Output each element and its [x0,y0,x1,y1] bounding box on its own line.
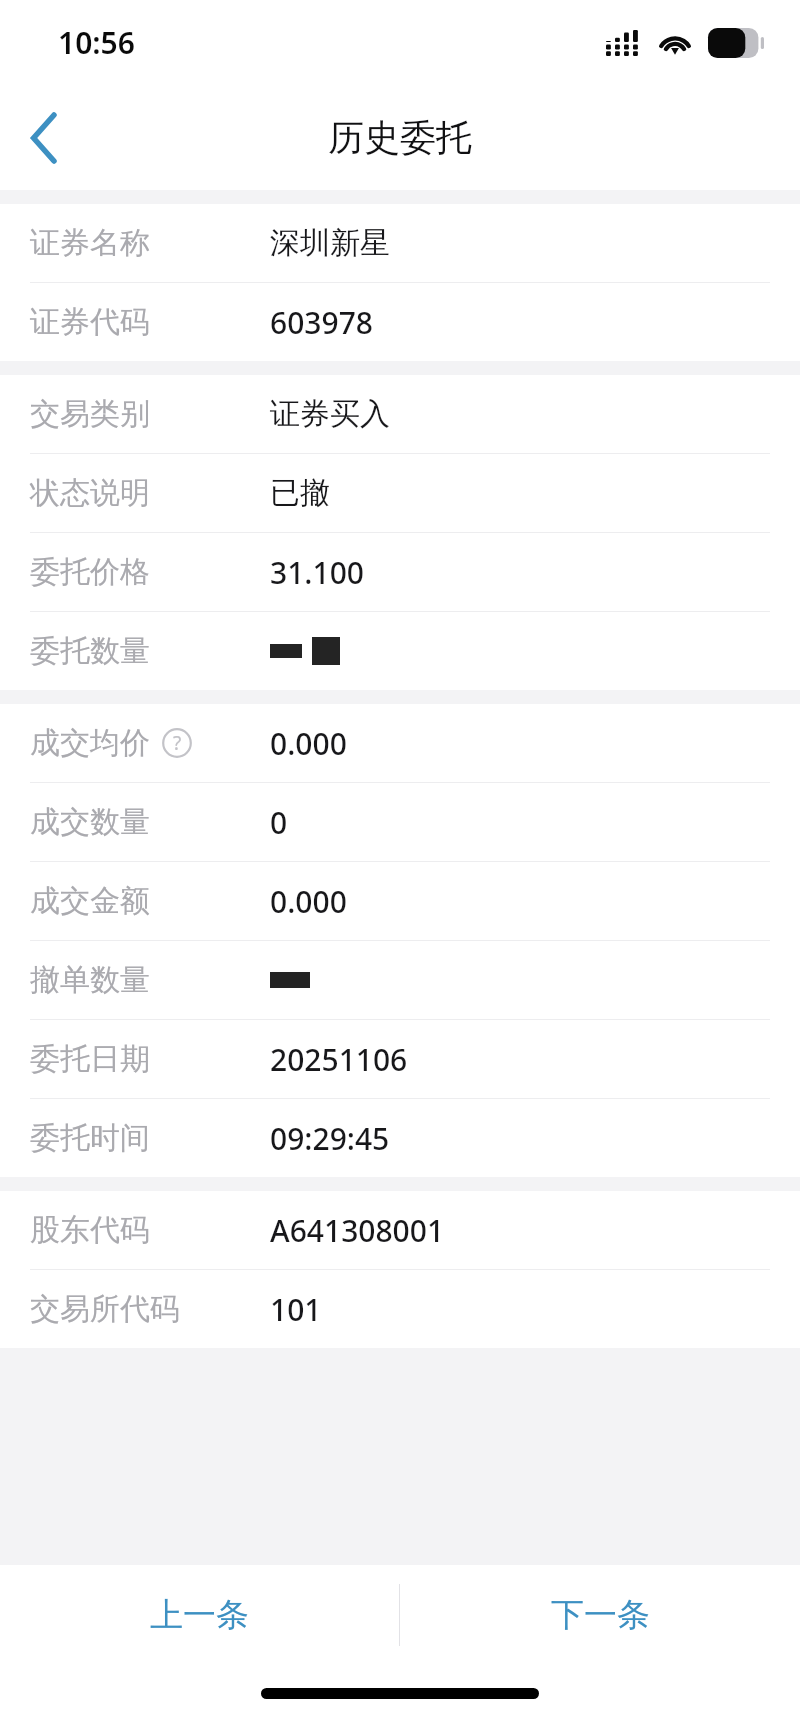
staticText: 09:29:45 [270,1118,390,1159]
staticText: 上一条 [150,1594,249,1636]
button[interactable]: 委托时间 [0,1099,800,1177]
staticText: 委托价格 [30,553,150,591]
staticText: 委托时间 [30,1119,150,1157]
button[interactable]: 撤单数量 [0,941,800,1019]
staticText: 10:56 [58,22,135,63]
button[interactable]: Help [162,728,192,758]
button[interactable]: Back [0,93,90,183]
button[interactable]: 委托数量 [0,612,800,690]
staticText: 历史委托 [328,115,472,160]
staticText: 0.000 [270,723,347,764]
button[interactable]: 成交均价 [0,704,800,782]
staticText: 成交均价 [30,724,150,762]
button[interactable]: 委托价格 [0,533,800,611]
button[interactable]: 状态说明 [0,454,800,532]
button[interactable]: 委托日期 [0,1020,800,1098]
staticText: 下一条 [551,1594,650,1636]
staticText: 撤单数量 [30,961,150,999]
staticText: 0.000 [270,881,347,922]
button[interactable]: 交易类别 [0,375,800,453]
staticText: 证券买入 [270,395,390,433]
staticText: 101 [270,1289,322,1330]
staticText: 20251106 [270,1039,408,1080]
staticText: 已撤 [270,474,330,512]
staticText: 成交金额 [30,882,150,920]
staticText: A641308001 [270,1210,445,1251]
staticText: 交易类别 [30,395,150,433]
staticText: 成交数量 [30,803,150,841]
staticText: 深圳新星 [270,224,390,262]
staticText: 证券代码 [30,303,150,341]
button[interactable]: 成交数量 [0,783,800,861]
button[interactable]: 证券代码 [0,283,800,361]
staticText: ? [173,730,182,756]
button[interactable]: 证券名称 [0,204,800,282]
button[interactable]: 上一条 [0,1565,399,1665]
button[interactable]: 交易所代码 [0,1270,800,1348]
staticText: 委托日期 [30,1040,150,1078]
button[interactable]: 成交金额 [0,862,800,940]
staticText: 状态说明 [30,474,150,512]
staticText: 交易所代码 [30,1290,180,1328]
button[interactable]: 股东代码 [0,1191,800,1269]
staticText: 股东代码 [30,1211,150,1249]
staticText: 证券名称 [30,224,150,262]
staticText: 0 [270,802,288,843]
staticText: 603978 [270,302,373,343]
staticText: 31.100 [270,552,364,593]
button[interactable]: 下一条 [400,1565,800,1665]
staticText: 委托数量 [30,632,150,670]
